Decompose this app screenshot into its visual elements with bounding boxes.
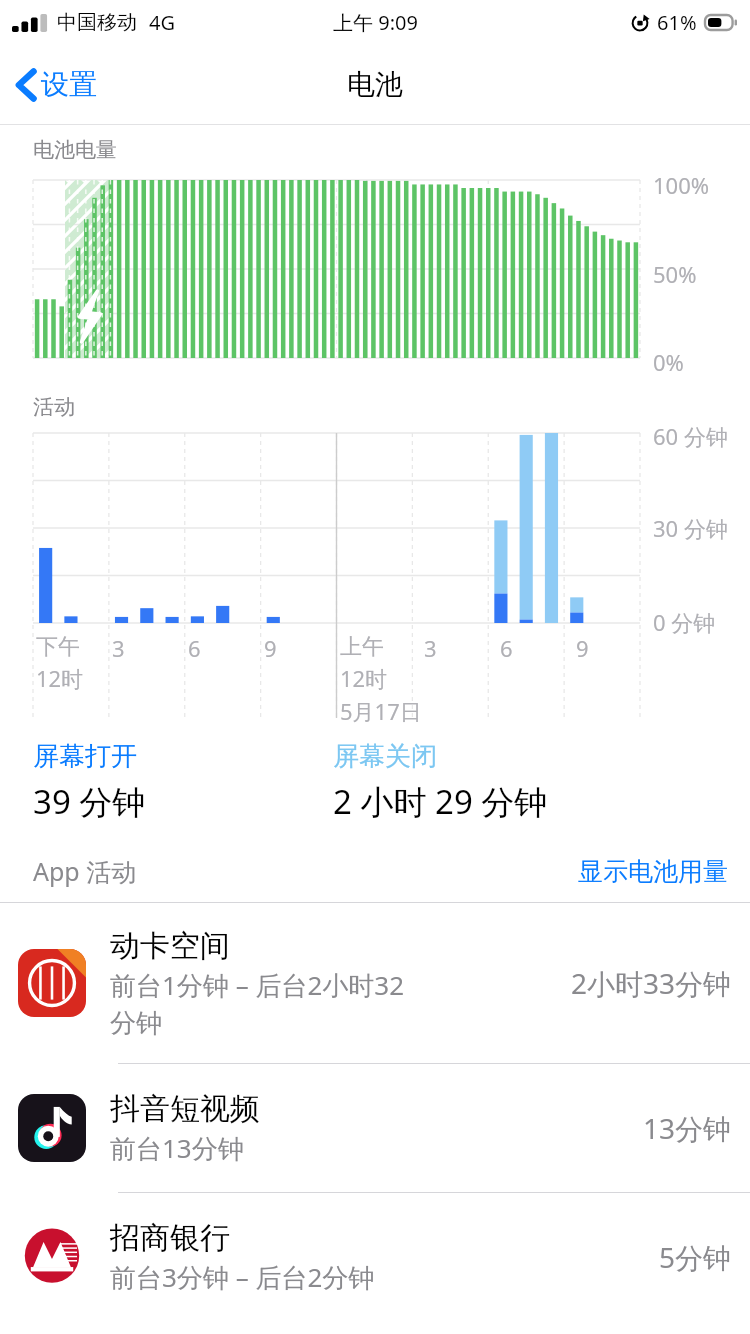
staticText: 13分钟 — [643, 1109, 732, 1147]
staticText: 4G — [149, 9, 175, 36]
staticText: 活动 — [33, 394, 75, 420]
staticText: 0% — [653, 347, 684, 377]
staticText: 前台13分钟 — [110, 1130, 244, 1166]
staticText: 上午 9:09 — [333, 9, 418, 36]
other: Rotation lock — [631, 14, 649, 32]
staticText: 3 — [424, 633, 437, 663]
button[interactable]: 设置 — [6, 59, 107, 110]
button[interactable]: 显示电池用量 — [578, 856, 728, 887]
button[interactable]: 动卡空间 — [0, 903, 750, 1063]
staticText: 3 — [112, 633, 125, 663]
staticText: 电池 — [347, 67, 403, 102]
staticText: 前台1分钟 – 后台2小时32 分钟 — [110, 967, 405, 1040]
staticText: 0 分钟 — [653, 607, 716, 637]
staticText: 抖音短视频 — [110, 1090, 260, 1128]
staticText: 30 分钟 — [653, 513, 728, 543]
staticText: 屏幕打开 — [33, 740, 137, 773]
staticText: 9 — [576, 633, 589, 663]
staticText: 60 分钟 — [653, 421, 728, 451]
staticText: 2 小时 29 分钟 — [333, 779, 548, 824]
staticText: 显示电池用量 — [578, 856, 728, 887]
staticText: 2小时33分钟 — [571, 964, 732, 1002]
button[interactable]: 抖音短视频 — [0, 1064, 750, 1192]
staticText: 61% — [657, 9, 697, 36]
staticText: 5分钟 — [659, 1238, 732, 1276]
staticText: 中国移动 — [57, 10, 137, 35]
staticText: 6 — [188, 633, 201, 663]
staticText: 100% — [653, 170, 710, 200]
staticText: 电池电量 — [33, 137, 117, 163]
staticText: 下午 12时 — [36, 633, 84, 694]
staticText: 前台3分钟 – 后台2分钟 — [110, 1259, 375, 1295]
button[interactable]: 招商银行 — [0, 1193, 750, 1321]
staticText: App 活动 — [33, 854, 137, 888]
staticText: 动卡空间 — [110, 927, 230, 965]
staticText: 上午 12时 5月17日 — [340, 633, 422, 727]
staticText: 6 — [500, 633, 513, 663]
staticText: 屏幕关闭 — [333, 740, 437, 773]
staticText: 39 分钟 — [33, 779, 146, 824]
staticText: 9 — [264, 633, 277, 663]
staticText: 招商银行 — [110, 1219, 230, 1257]
staticText: 50% — [653, 259, 697, 289]
staticText: 设置 — [41, 67, 97, 102]
